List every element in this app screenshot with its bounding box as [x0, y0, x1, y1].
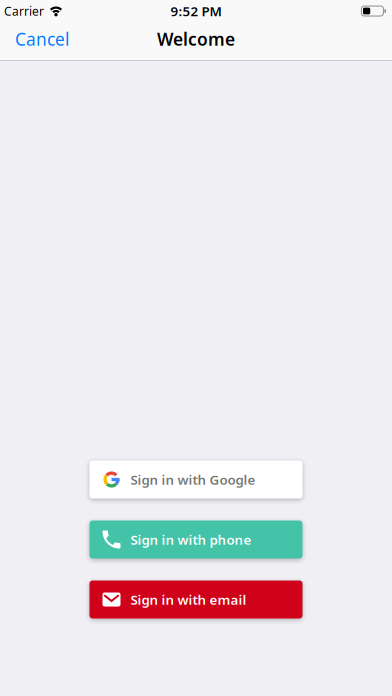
staticText: Carrier: [4, 3, 44, 19]
button[interactable]: Sign in with Google: [89, 460, 302, 498]
staticText: Cancel: [15, 27, 69, 50]
staticText: Welcome: [157, 27, 235, 50]
staticText: Sign in with phone: [130, 531, 251, 548]
button[interactable]: Sign in with email: [89, 580, 302, 618]
staticText: Sign in with email: [130, 591, 246, 608]
button[interactable]: Cancel: [15, 27, 69, 50]
button[interactable]: Sign in with phone: [89, 520, 302, 558]
staticText: 9:52 PM: [170, 2, 221, 20]
staticText: Sign in with Google: [130, 471, 255, 488]
